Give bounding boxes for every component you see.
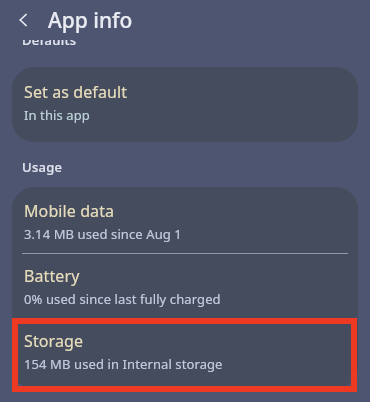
staticText: In this app <box>24 106 90 124</box>
staticText: Defaults <box>22 40 77 49</box>
staticText: Usage <box>22 158 63 176</box>
staticText: App info <box>48 6 133 35</box>
staticText: 0% used since last fully charged <box>24 290 221 308</box>
staticText: 154 MB used in Internal storage <box>24 355 223 373</box>
staticText: 3.14 MB used since Aug 1 <box>24 225 182 243</box>
button[interactable]: Back <box>8 3 42 37</box>
button[interactable]: Storage <box>12 319 358 389</box>
staticText: Storage <box>24 330 84 352</box>
staticText: Set as default <box>24 81 128 103</box>
staticText: Battery <box>24 265 80 287</box>
button[interactable]: Mobile data <box>12 187 358 253</box>
button[interactable]: Battery <box>12 254 358 318</box>
staticText: Mobile data <box>24 200 115 222</box>
button[interactable]: Set as default <box>12 67 358 142</box>
